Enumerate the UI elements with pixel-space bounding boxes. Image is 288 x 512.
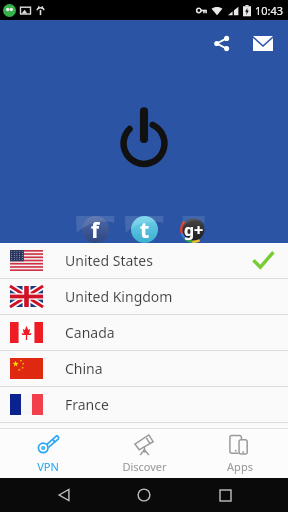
button[interactable]: United Kingdom — [0, 279, 288, 314]
button[interactable]: China — [0, 351, 288, 386]
button[interactable]: VPN — [0, 428, 96, 478]
button[interactable]: Google Plus — [174, 216, 213, 243]
button[interactable]: Twitter — [125, 216, 164, 243]
button[interactable]: Recents — [208, 478, 242, 512]
staticText: United States — [65, 251, 153, 270]
staticText: 10:43 — [255, 3, 284, 18]
button[interactable]: Discover — [96, 428, 192, 478]
button[interactable]: Back — [47, 478, 81, 512]
button[interactable]: Home — [127, 478, 161, 512]
staticText: Discover — [122, 459, 167, 474]
staticText: g+ — [184, 219, 204, 241]
button[interactable]: Canada — [0, 315, 288, 350]
staticText: VPN — [37, 459, 59, 474]
button[interactable]: Share — [208, 30, 234, 56]
staticText: t — [140, 216, 150, 243]
staticText: United Kingdom — [65, 287, 173, 306]
staticText: China — [65, 359, 103, 378]
button[interactable]: Apps — [192, 428, 288, 478]
staticText: f — [91, 216, 100, 243]
staticText: Canada — [65, 323, 115, 342]
staticText: Apps — [227, 459, 253, 474]
button[interactable]: Facebook — [76, 216, 115, 243]
button[interactable]: France — [0, 387, 288, 422]
button[interactable]: Power — [113, 105, 175, 167]
button[interactable]: United States — [0, 243, 288, 278]
button[interactable]: Email — [250, 30, 276, 56]
staticText: France — [65, 395, 109, 414]
